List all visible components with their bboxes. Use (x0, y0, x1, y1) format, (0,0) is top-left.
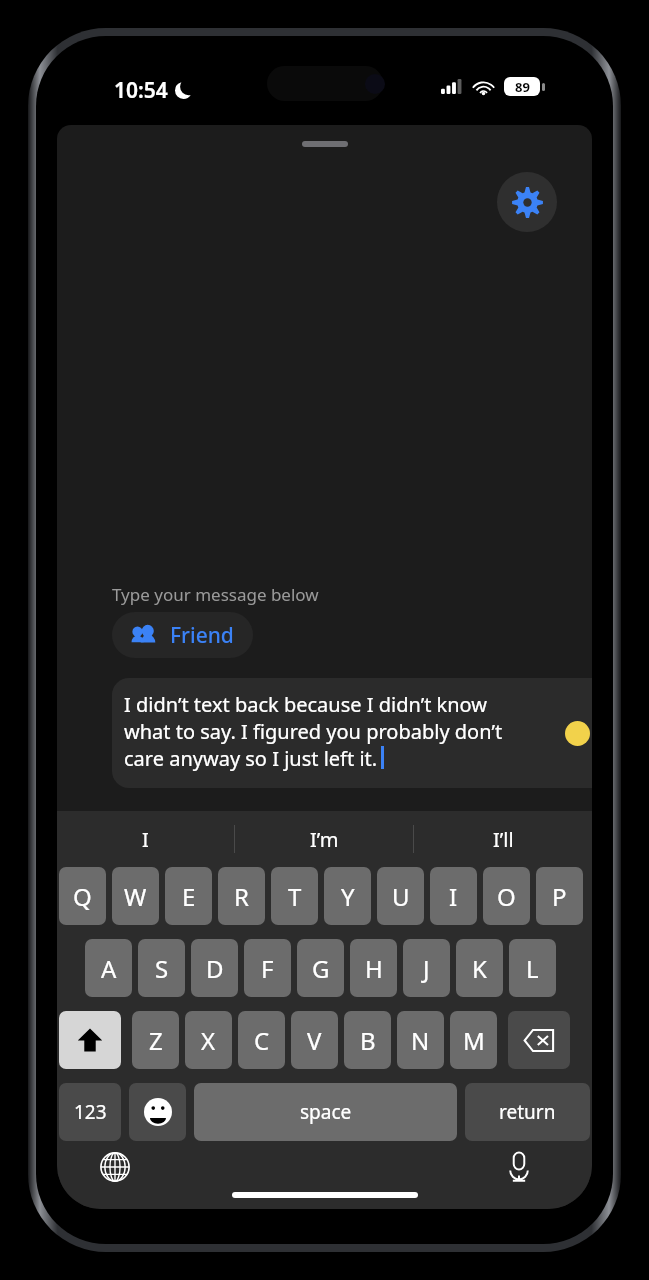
button[interactable]: I didn’t text back because I didn’t know (112, 678, 592, 788)
button[interactable]: D (191, 939, 238, 997)
button[interactable]: W (112, 867, 159, 925)
staticText: S (155, 952, 169, 985)
button[interactable]: M (450, 1011, 497, 1069)
button[interactable]: Emoji (129, 1083, 186, 1141)
button[interactable]: Change keyboard (93, 1145, 137, 1189)
staticText: I (449, 880, 458, 913)
staticText: I didn’t text back because I didn’t know (124, 691, 488, 718)
button[interactable]: F (244, 939, 291, 997)
staticText: R (234, 880, 249, 913)
button[interactable]: I (430, 867, 477, 925)
button[interactable]: U (377, 867, 424, 925)
staticText: D (206, 952, 224, 985)
button[interactable]: V (291, 1011, 338, 1069)
staticText: Y (341, 880, 355, 913)
button[interactable]: C (238, 1011, 285, 1069)
button[interactable]: S (138, 939, 185, 997)
button[interactable]: K (456, 939, 503, 997)
button[interactable]: J (403, 939, 450, 997)
button[interactable]: Friend (112, 612, 253, 658)
staticText: 123 (74, 1099, 107, 1125)
button[interactable]: X (185, 1011, 232, 1069)
staticText: P (552, 880, 567, 913)
staticText: X (201, 1024, 216, 1057)
button[interactable]: Y (324, 867, 371, 925)
button[interactable]: I (57, 811, 234, 867)
staticText: L (526, 952, 539, 985)
staticText: C (254, 1024, 270, 1057)
staticText: N (411, 1024, 430, 1057)
button[interactable]: H (350, 939, 397, 997)
button[interactable]: Z (132, 1011, 179, 1069)
button[interactable]: P (536, 867, 583, 925)
staticText: I (142, 826, 149, 853)
button[interactable]: Shift (59, 1011, 121, 1069)
staticText: W (124, 880, 147, 913)
staticText: return (499, 1099, 556, 1125)
staticText: I’ll (493, 826, 514, 853)
staticText: J (423, 952, 430, 985)
button[interactable]: I’m (235, 811, 413, 867)
staticText: K (472, 952, 487, 985)
button[interactable]: Backspace (508, 1011, 570, 1069)
staticText: A (101, 952, 117, 985)
staticText: I’m (310, 826, 339, 853)
button[interactable]: Dictate (497, 1145, 541, 1189)
button[interactable]: N (397, 1011, 444, 1069)
button[interactable]: B (344, 1011, 391, 1069)
staticText: what to say. I figured you probably don’… (124, 718, 503, 745)
staticText: 10:54 (114, 76, 168, 105)
button[interactable]: return (465, 1083, 590, 1141)
staticText: G (312, 952, 330, 985)
button[interactable]: I’ll (414, 811, 592, 867)
button[interactable]: Q (59, 867, 106, 925)
button[interactable]: R (218, 867, 265, 925)
staticText: E (182, 880, 196, 913)
staticText: U (392, 880, 410, 913)
button[interactable]: space (194, 1083, 457, 1141)
button[interactable]: Settings (497, 172, 557, 232)
staticText: Q (73, 880, 92, 913)
staticText: V (307, 1024, 322, 1057)
staticText: B (360, 1024, 376, 1057)
staticText: Type your message below (112, 583, 319, 606)
staticText: O (497, 880, 516, 913)
button[interactable]: G (297, 939, 344, 997)
button[interactable]: E (165, 867, 212, 925)
button[interactable]: L (509, 939, 556, 997)
staticText: M (463, 1024, 485, 1057)
button[interactable]: O (483, 867, 530, 925)
button[interactable]: T (271, 867, 318, 925)
staticText: H (365, 952, 383, 985)
staticText: Z (149, 1024, 163, 1057)
button[interactable]: 123 (59, 1083, 121, 1141)
button[interactable]: A (85, 939, 132, 997)
staticText: care anyway so I just left it. (124, 745, 378, 772)
staticText: 89 (515, 78, 530, 96)
staticText: Friend (170, 621, 234, 650)
staticText: T (288, 880, 302, 913)
staticText: space (300, 1099, 352, 1125)
staticText: F (261, 952, 274, 985)
